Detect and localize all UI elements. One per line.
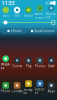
staticText: Chrome bbox=[12, 64, 23, 68]
button[interactable]: WhatsApp bbox=[0, 57, 11, 68]
button[interactable]: Bluetooth bbox=[46, 6, 57, 18]
button[interactable]: Messages bbox=[23, 82, 34, 93]
staticText: Screen rotation bbox=[34, 12, 45, 19]
staticText: Bluetooth bbox=[46, 12, 57, 19]
button[interactable]: Play bbox=[23, 57, 34, 68]
staticText: S Finder bbox=[11, 29, 22, 33]
staticText: Internet bbox=[35, 88, 45, 95]
staticText: 11:33 bbox=[1, 0, 14, 7]
button[interactable]: Apps bbox=[46, 82, 57, 93]
button[interactable]: Photos bbox=[34, 57, 46, 68]
button[interactable]: Quick Connect bbox=[29, 28, 56, 34]
staticText: Contacts bbox=[12, 89, 23, 93]
button[interactable]: Internet bbox=[34, 82, 46, 93]
staticText: Apps bbox=[48, 89, 55, 93]
button[interactable]: Wi-Fi bbox=[0, 6, 11, 18]
staticText: Quick Connect bbox=[34, 29, 54, 33]
button[interactable]: Screen rotation bbox=[34, 6, 46, 18]
staticText: Gmail bbox=[48, 64, 55, 68]
staticText: Phone bbox=[1, 89, 11, 93]
staticText: WhatsApp bbox=[1, 63, 11, 70]
staticText: Wi-Fi bbox=[3, 14, 9, 17]
staticText: GPS bbox=[15, 14, 20, 17]
button[interactable]: Gmail bbox=[46, 57, 57, 68]
button[interactable]: Sound bbox=[23, 6, 34, 18]
button[interactable]: S Finder bbox=[1, 28, 28, 34]
staticText: Messages bbox=[23, 88, 33, 95]
button[interactable]: Contacts bbox=[11, 82, 23, 93]
button[interactable]: Chrome bbox=[11, 57, 23, 68]
staticText: Play bbox=[26, 64, 31, 68]
button[interactable]: GPS bbox=[11, 6, 23, 18]
staticText: Sound bbox=[24, 14, 33, 17]
staticText: Photos bbox=[35, 64, 45, 68]
staticText: 4G bbox=[45, 0, 50, 6]
button[interactable]: Phone bbox=[0, 82, 11, 93]
